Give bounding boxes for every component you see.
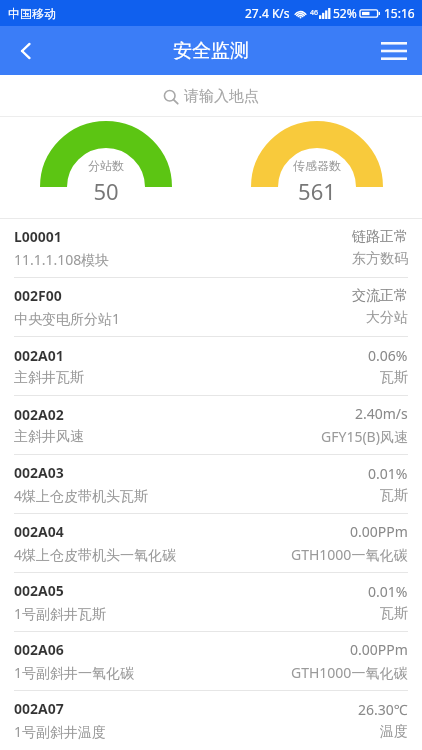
button[interactable]: 002A07 [0, 691, 422, 749]
staticText: 0.01% [368, 464, 408, 483]
staticText: 002A05 [14, 581, 64, 600]
button[interactable]: 002A03 [0, 455, 422, 513]
button[interactable]: 002A06 [0, 632, 422, 690]
button[interactable]: 002A01 [0, 337, 422, 395]
button[interactable]: 请输入地点 [0, 75, 422, 117]
button[interactable]: Back [0, 26, 52, 75]
staticText: 4煤上仓皮带机头一氧化碳 [14, 545, 177, 564]
staticText: 11.1.1.108模块 [14, 250, 110, 269]
staticText: 27.4 K/s [245, 5, 290, 21]
staticText: 0.01% [368, 582, 408, 601]
button[interactable]: 002A04 [0, 514, 422, 572]
staticText: GFY15(B)风速 [321, 427, 408, 446]
staticText: 2.40m/s [355, 404, 408, 423]
staticText: 002F00 [14, 286, 62, 305]
staticText: 002A04 [14, 522, 64, 541]
staticText: 50 [93, 176, 119, 206]
button[interactable]: 002F00 [0, 278, 422, 336]
staticText: 15:16 [384, 5, 415, 21]
staticText: 46 [310, 8, 319, 18]
staticText: 温度 [380, 723, 408, 741]
staticText: 主斜井瓦斯 [14, 369, 84, 387]
staticText: 交流正常 [352, 287, 408, 305]
staticText: 瓦斯 [380, 487, 408, 505]
staticText: 大分站 [366, 309, 408, 327]
button[interactable]: 002A05 [0, 573, 422, 631]
staticText: 中国移动 [8, 6, 56, 21]
staticText: 传感器数 [293, 158, 341, 173]
staticText: GTH1000一氧化碳 [291, 545, 408, 564]
button[interactable]: Menu [366, 26, 422, 75]
staticText: 分站数 [88, 158, 124, 173]
staticText: 0.00PPm [350, 522, 408, 541]
button[interactable]: 002A02 [0, 396, 422, 454]
staticText: 002A02 [14, 405, 64, 424]
staticText: 主斜井风速 [14, 428, 84, 446]
staticText: 请输入地点 [184, 87, 259, 106]
staticText: 中央变电所分站1 [14, 309, 121, 328]
staticText: 561 [298, 176, 336, 206]
staticText: 1号副斜井一氧化碳 [14, 663, 135, 682]
staticText: 002A03 [14, 463, 64, 482]
staticText: 安全监测 [173, 39, 249, 63]
staticText: 002A07 [14, 699, 64, 718]
staticText: 52% [333, 5, 357, 21]
staticText: 1号副斜井温度 [14, 722, 107, 741]
staticText: 4煤上仓皮带机头瓦斯 [14, 486, 149, 505]
staticText: 0.00PPm [350, 640, 408, 659]
staticText: 002A01 [14, 346, 64, 365]
staticText: 26.30℃ [358, 700, 408, 719]
staticText: 002A06 [14, 640, 64, 659]
staticText: 1号副斜井瓦斯 [14, 604, 107, 623]
button[interactable]: L00001 [0, 219, 422, 277]
staticText: GTH1000一氧化碳 [291, 663, 408, 682]
staticText: 瓦斯 [380, 605, 408, 623]
staticText: 链路正常 [352, 228, 408, 246]
staticText: 瓦斯 [380, 369, 408, 387]
staticText: L00001 [14, 227, 62, 246]
staticText: 0.06% [368, 346, 408, 365]
staticText: 东方数码 [352, 250, 408, 268]
